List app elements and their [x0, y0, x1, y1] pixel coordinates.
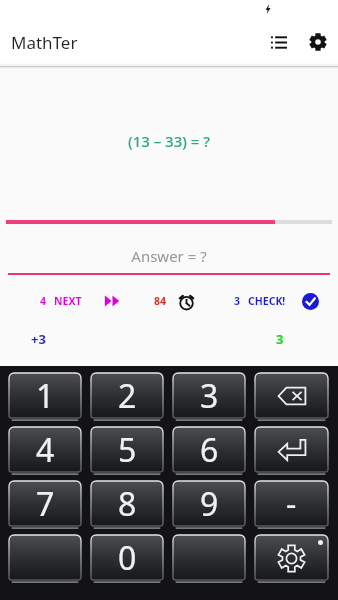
staticText: 6 [200, 428, 219, 472]
staticText: 9 [200, 482, 219, 526]
button[interactable] [255, 373, 328, 421]
staticText: 3 [200, 374, 219, 418]
button[interactable]: 3 [173, 373, 245, 421]
button[interactable]: 6 [173, 427, 245, 475]
staticText: +3 [31, 330, 46, 348]
button[interactable]: 7 [9, 481, 81, 529]
button[interactable]: 4 [40, 292, 120, 310]
button[interactable]: 1 [9, 373, 81, 421]
button[interactable]: 0 [91, 535, 163, 583]
staticText: NEXT [54, 294, 82, 308]
staticText: 3 [234, 294, 241, 308]
button[interactable]: Settings [298, 22, 338, 62]
button[interactable] [9, 535, 81, 583]
button[interactable] [255, 427, 328, 475]
staticText: 4 [36, 428, 55, 472]
staticText: 84 [154, 294, 167, 308]
button[interactable]: 5 [91, 427, 163, 475]
button[interactable] [255, 535, 328, 583]
staticText: Answer = ? [0, 246, 338, 266]
staticText: MathTer [11, 31, 78, 54]
staticText: - [286, 482, 297, 526]
staticText: 8 [118, 482, 137, 526]
button[interactable] [173, 535, 245, 583]
staticText: 2 [118, 374, 137, 418]
staticText: 3 [276, 330, 284, 348]
staticText: CHECK! [248, 294, 286, 308]
button[interactable]: Timer [154, 292, 195, 310]
staticText: 7 [36, 482, 55, 526]
staticText: 1 [36, 374, 55, 418]
button[interactable]: List [259, 22, 299, 62]
staticText: 4 [40, 294, 47, 308]
staticText: 0 [118, 536, 137, 580]
button[interactable]: 2 [91, 373, 163, 421]
button[interactable]: 9 [173, 481, 245, 529]
staticText: 5 [118, 428, 137, 472]
button[interactable]: 8 [91, 481, 163, 529]
button[interactable]: 4 [9, 427, 81, 475]
button[interactable]: - [255, 481, 328, 529]
button[interactable]: 3 [234, 292, 319, 310]
staticText: (13 – 33) = ? [0, 131, 338, 151]
